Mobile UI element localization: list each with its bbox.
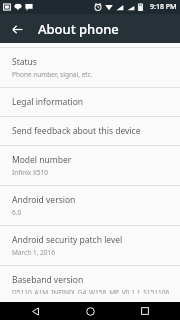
staticText: Baseband version	[12, 274, 84, 286]
button[interactable]: Back	[7, 19, 27, 39]
button[interactable]: Android security patch level	[0, 226, 180, 265]
staticText: Android security patch level	[12, 234, 123, 246]
staticText: Phone number, signal, etc.	[12, 70, 93, 79]
button[interactable]: Status	[0, 48, 180, 87]
button[interactable]: Legal information	[0, 88, 180, 116]
staticText: Legal information	[12, 96, 84, 108]
button[interactable]: Baseband version	[0, 266, 180, 302]
button[interactable]: Android version	[0, 186, 180, 225]
staticText: Infinix X510	[12, 168, 48, 177]
button[interactable]: Model number	[0, 146, 180, 185]
staticText: March 1, 2016	[12, 248, 55, 257]
staticText: 9:18 PM	[150, 2, 177, 12]
staticText: Status	[12, 56, 37, 68]
button[interactable]: Send feedback about this device	[0, 117, 180, 145]
staticText: 6.0	[12, 208, 22, 217]
staticText: D5110_A1M_INFINIX_G4_W158_MP_V0.1.1_S151…	[12, 288, 170, 294]
staticText: Send feedback about this device	[12, 125, 141, 137]
button[interactable]: Back	[15, 302, 55, 320]
staticText: About phone	[38, 20, 119, 38]
button[interactable]: Home	[70, 302, 110, 320]
button[interactable]: Recent apps	[125, 302, 165, 320]
staticText: Model number	[12, 154, 72, 166]
staticText: Android version	[12, 194, 76, 206]
